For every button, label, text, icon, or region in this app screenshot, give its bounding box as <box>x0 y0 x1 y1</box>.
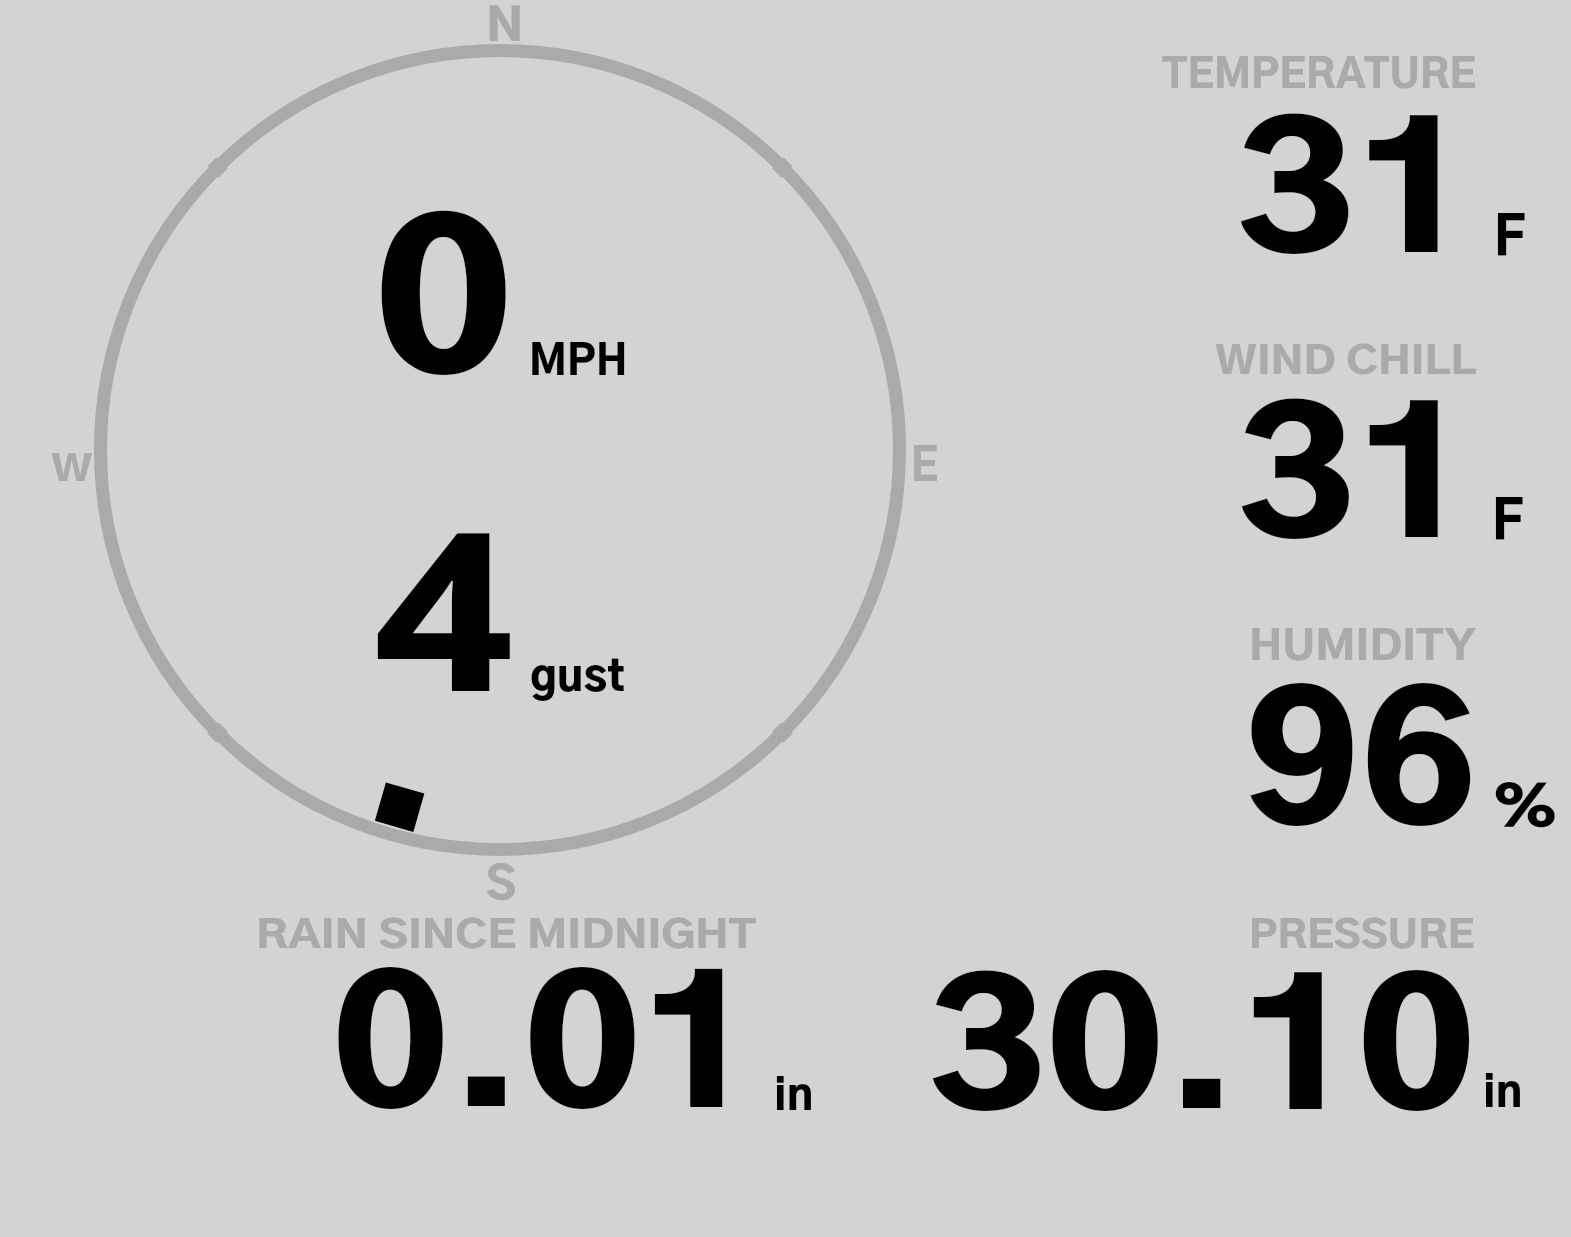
staticText: W <box>51 454 93 488</box>
staticText: in <box>1483 1073 1522 1115</box>
staticText: HUMIDITY <box>1249 628 1476 668</box>
staticText: 31 <box>1237 401 1474 570</box>
staticText: % <box>1492 783 1558 838</box>
staticText: gust <box>530 657 626 699</box>
staticText: S <box>486 865 517 909</box>
staticText: 31 <box>1236 116 1474 285</box>
staticText: 0 <box>374 215 513 411</box>
staticText: F <box>1494 215 1525 267</box>
staticText: TEMPERATURE <box>1162 57 1476 96</box>
staticText: 96 <box>1245 686 1477 858</box>
button[interactable]: Wind direction compass <box>0 0 1571 1237</box>
staticText: 30.10 <box>928 973 1475 1142</box>
staticText: 0.01 <box>332 970 758 1140</box>
staticText: in <box>774 1076 813 1118</box>
staticText: 4 <box>373 535 515 729</box>
staticText: MPH <box>529 342 628 383</box>
staticText: RAIN SINCE MIDNIGHT <box>256 918 757 955</box>
staticText: PRESSURE <box>1249 918 1474 955</box>
staticText: E <box>911 445 939 490</box>
staticText: WIND CHILL <box>1215 344 1477 382</box>
other: Wind direction compass <box>0 0 1571 1237</box>
staticText: N <box>486 5 524 50</box>
staticText: F <box>1492 499 1523 551</box>
